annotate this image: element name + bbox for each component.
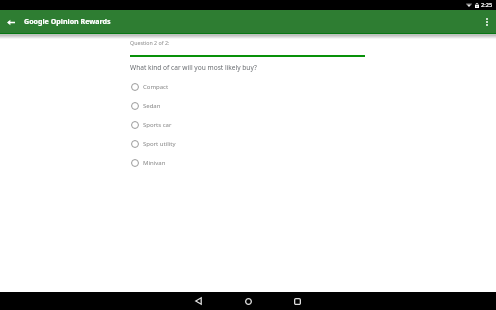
button[interactable]: Sports car	[130, 115, 496, 134]
staticText: Sport utility	[143, 140, 176, 148]
button[interactable]: More options	[476, 11, 496, 33]
button[interactable]: Sport utility	[130, 134, 496, 153]
button[interactable]: Recent apps	[285, 292, 310, 310]
button[interactable]: Minivan	[130, 153, 496, 172]
button[interactable]: Back	[186, 292, 211, 310]
staticText: Sedan	[143, 102, 161, 110]
button[interactable]: Sedan	[130, 96, 496, 115]
staticText: Minivan	[143, 159, 166, 167]
staticText: What kind of car will you most likely bu…	[130, 63, 257, 72]
staticText: Question 2 of 2:	[130, 39, 170, 46]
button[interactable]: Home	[236, 292, 261, 310]
staticText: 2:25	[481, 1, 493, 9]
button[interactable]: Compact	[130, 77, 496, 96]
staticText: Google Opinion Rewards	[24, 16, 111, 26]
staticText: Compact	[143, 83, 169, 91]
staticText: Sports car	[143, 121, 172, 129]
button[interactable]: Back	[0, 11, 22, 33]
